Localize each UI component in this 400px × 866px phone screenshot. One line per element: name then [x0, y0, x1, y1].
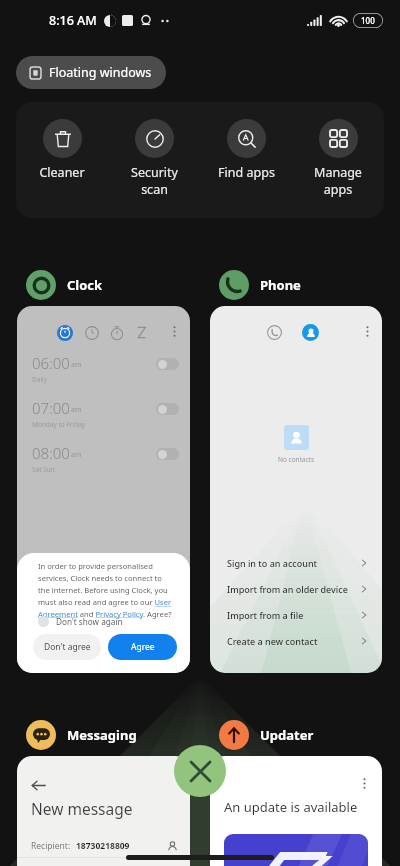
staticText: Import from an older device — [227, 583, 348, 595]
staticText: Don't agree — [44, 641, 91, 653]
button[interactable]: Don't show again — [38, 616, 123, 627]
button[interactable]: Alarm — [57, 325, 73, 341]
staticText: 100 — [361, 15, 375, 26]
staticText: 08:00 — [32, 443, 70, 463]
staticText: Phone — [260, 276, 301, 294]
button[interactable]: No contacts — [210, 306, 382, 673]
button[interactable]: Close all — [174, 745, 226, 797]
button[interactable]: Sign in to an account — [210, 550, 382, 576]
button[interactable]: Manage apps — [292, 102, 384, 197]
staticText: New message — [31, 798, 133, 819]
button[interactable]: Security scan — [108, 102, 200, 197]
button[interactable]: Stopwatch — [135, 326, 148, 339]
staticText: Cleaner — [39, 164, 85, 181]
staticText: am — [71, 405, 82, 415]
button[interactable]: More — [169, 326, 180, 337]
button[interactable]: Create a new contact — [210, 628, 382, 654]
staticText: Sat Sun — [32, 465, 55, 474]
staticText: Security scan — [131, 164, 178, 197]
button[interactable]: Find apps — [200, 102, 292, 181]
staticText: 8:16 AM — [49, 12, 97, 29]
staticText: An update is available — [224, 798, 358, 816]
staticText: Floating windows — [49, 64, 152, 81]
staticText: Import from a file — [227, 609, 304, 621]
button[interactable]: Timer — [110, 326, 124, 340]
staticText: Monday to Friday — [32, 420, 86, 429]
staticText: In order to provide personalised service… — [38, 561, 175, 619]
staticText: 07:00 — [32, 398, 70, 418]
button[interactable]: Updater — [210, 719, 314, 750]
button[interactable]: Clock — [17, 269, 103, 300]
button[interactable]: Import from a file — [210, 602, 382, 628]
staticText: Daily — [32, 375, 48, 384]
staticText: Updater — [260, 726, 314, 744]
button[interactable]: New message — [17, 756, 190, 866]
button[interactable]: Clock — [85, 326, 99, 340]
staticText: Find apps — [218, 164, 275, 181]
staticText: Create a new contact — [227, 635, 318, 647]
button[interactable]: Agree — [108, 634, 177, 660]
staticText: 18730218809 — [76, 840, 130, 852]
button[interactable]: Messaging — [17, 719, 137, 750]
staticText: 06:00 — [32, 353, 70, 373]
button[interactable]: An update is available — [210, 756, 382, 866]
staticText: am — [71, 360, 82, 370]
button[interactable]: Alarm — [17, 306, 190, 673]
button[interactable]: Cleaner — [16, 102, 108, 181]
staticText: Messaging — [67, 726, 137, 744]
staticText: Don't show again — [56, 616, 123, 627]
staticText: Agree — [131, 641, 155, 653]
staticText: No contacts — [278, 455, 315, 464]
button[interactable]: Phone — [210, 269, 301, 300]
staticText: am — [71, 450, 82, 460]
button[interactable]: Floating windows — [16, 56, 166, 89]
staticText: Recipient: — [31, 840, 71, 852]
staticText: Sign in to an account — [227, 557, 317, 569]
staticText: Manage apps — [314, 164, 362, 197]
staticText: Clock — [67, 276, 103, 294]
button[interactable]: Don't agree — [33, 634, 101, 660]
button[interactable]: Import from an older device — [210, 576, 382, 602]
